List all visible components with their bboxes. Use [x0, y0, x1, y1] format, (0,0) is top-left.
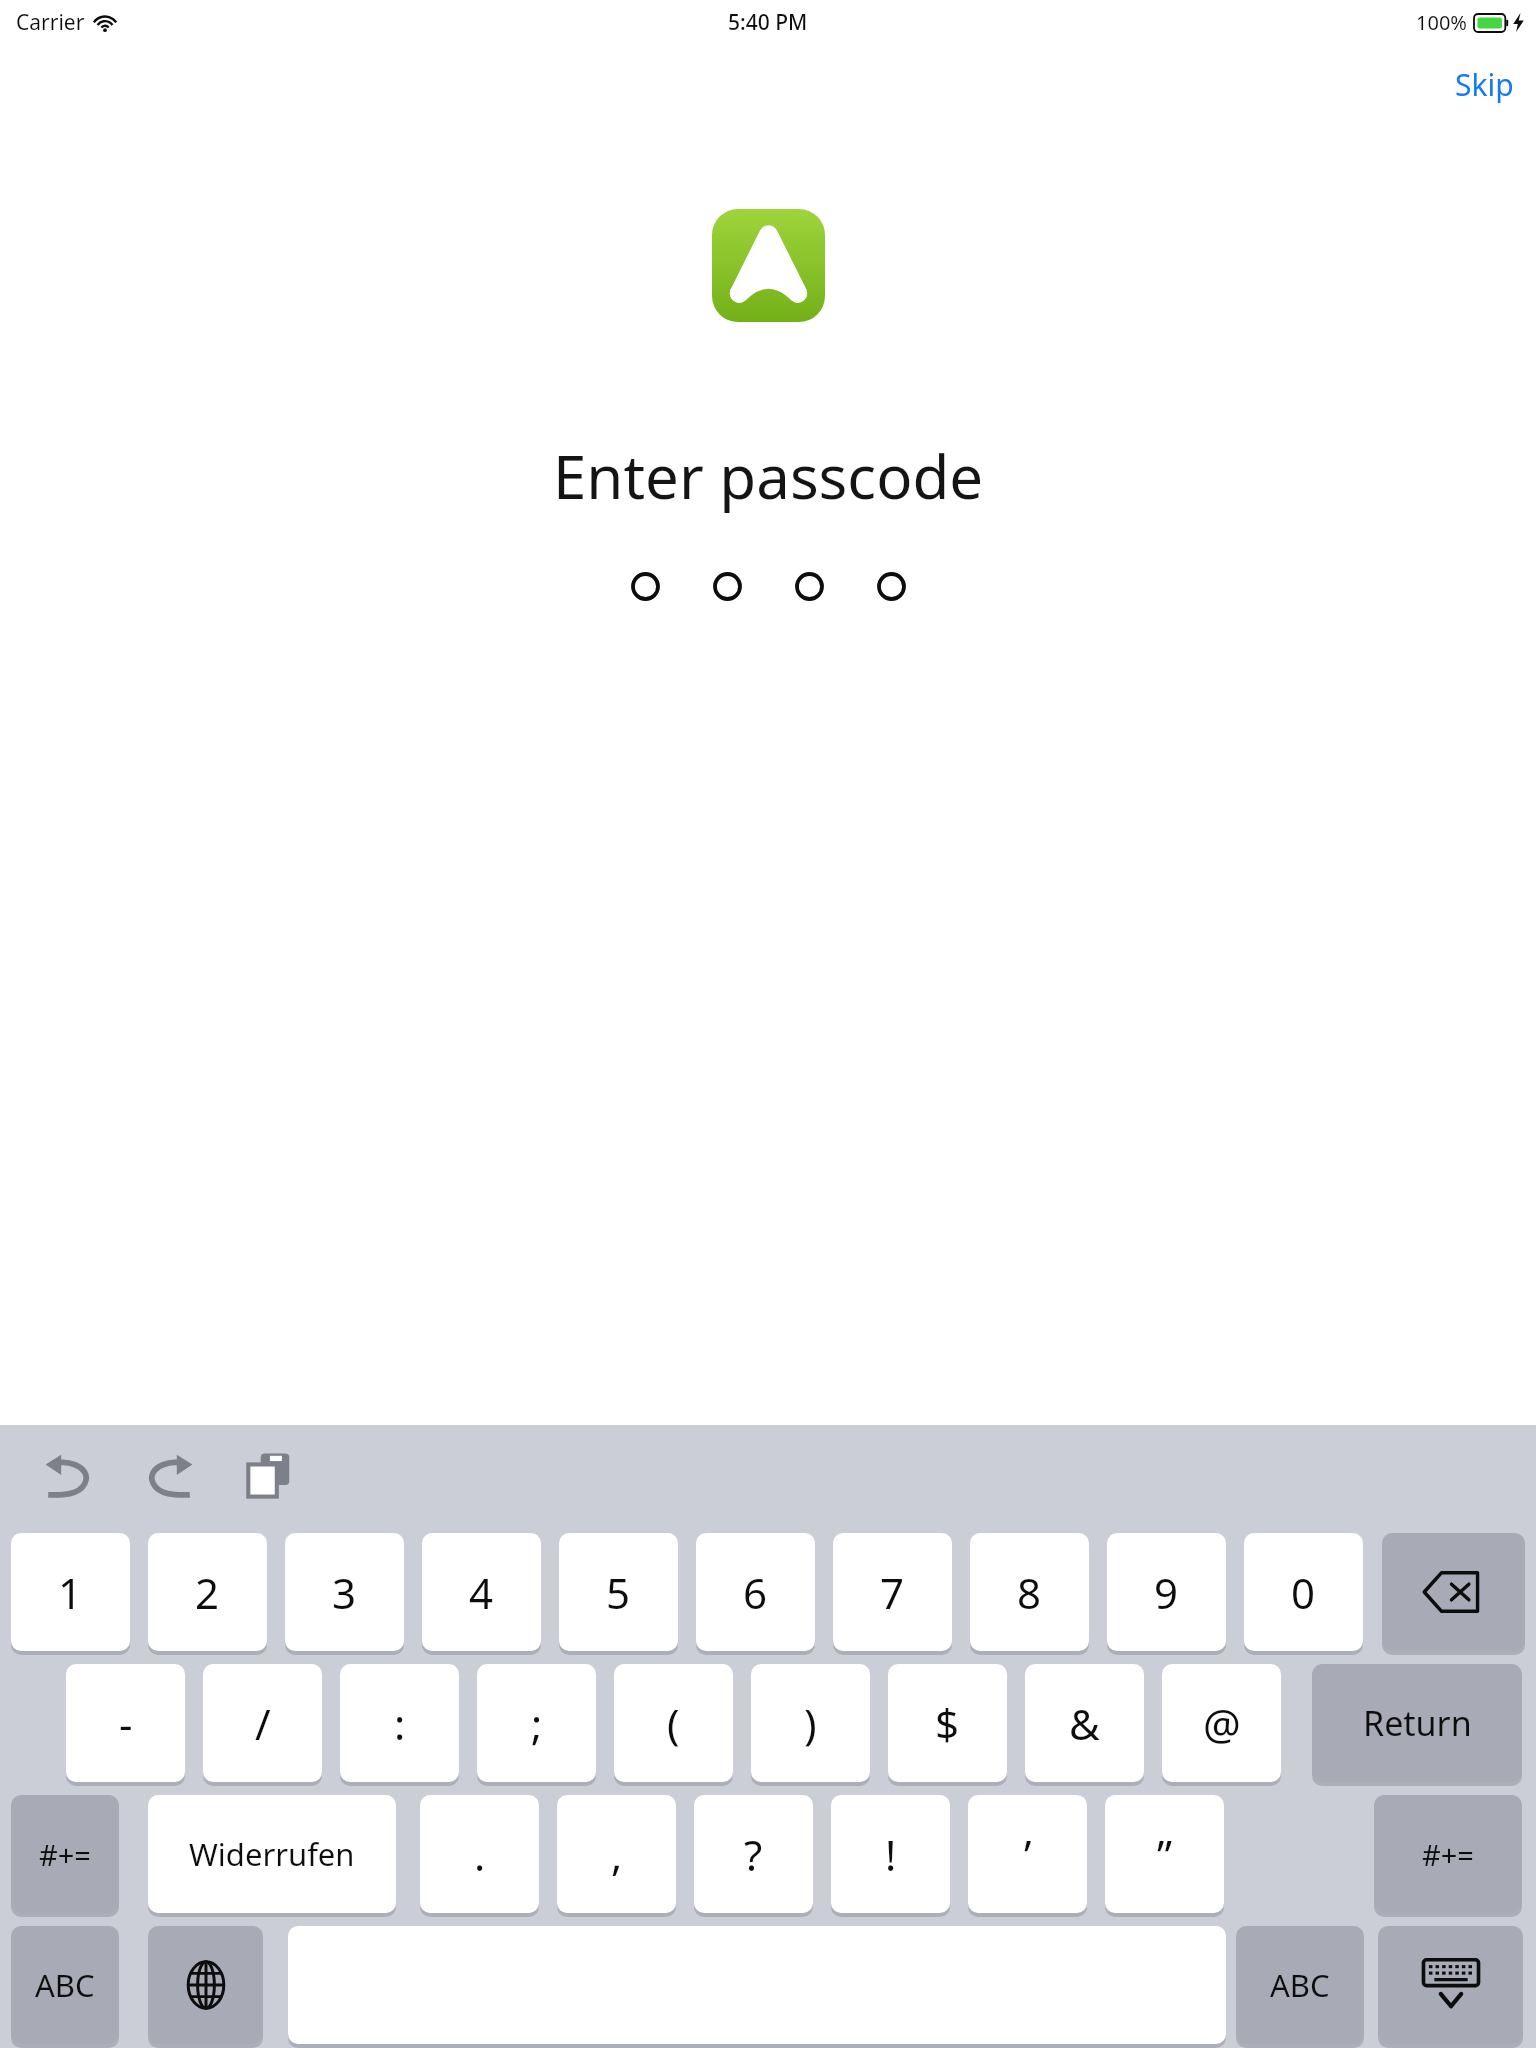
button[interactable]: 5 — [559, 1533, 678, 1651]
staticText: Enter passcode — [553, 435, 984, 517]
button[interactable]: Redo — [130, 1436, 208, 1514]
button[interactable]: 2 — [148, 1533, 267, 1651]
button[interactable]: #+= — [11, 1795, 119, 1913]
button[interactable]: Paste — [230, 1436, 308, 1514]
staticText: #+= — [1422, 1835, 1474, 1874]
button[interactable]: @ — [1162, 1664, 1281, 1782]
staticText: ABC — [35, 1964, 95, 2006]
button[interactable]: Skip — [1433, 56, 1536, 113]
button[interactable]: ? — [694, 1795, 813, 1913]
staticText: ( — [667, 1695, 680, 1752]
staticText: 4 — [469, 1564, 494, 1621]
staticText: Skip — [1455, 64, 1514, 105]
staticText: ; — [531, 1695, 543, 1752]
button[interactable]: . — [420, 1795, 539, 1913]
button[interactable]: 0 — [1244, 1533, 1363, 1651]
staticText: #+= — [39, 1835, 91, 1874]
button[interactable]: 1 — [11, 1533, 130, 1651]
button[interactable]: : — [340, 1664, 459, 1782]
staticText: Return — [1363, 1700, 1472, 1746]
button[interactable]: ; — [477, 1664, 596, 1782]
button[interactable]: ! — [831, 1795, 950, 1913]
button[interactable]: ’ — [968, 1795, 1087, 1913]
button[interactable]: 8 — [970, 1533, 1089, 1651]
button[interactable]: ( — [614, 1664, 733, 1782]
staticText: - — [119, 1695, 133, 1752]
button[interactable]: Hide keyboard — [1378, 1926, 1523, 2044]
staticText: , — [611, 1826, 623, 1883]
button[interactable]: Undo — [30, 1436, 108, 1514]
button[interactable]: #+= — [1374, 1795, 1522, 1913]
button[interactable]: Change keyboard — [148, 1926, 263, 2044]
staticText: ABC — [1270, 1964, 1330, 2006]
staticText: : — [394, 1695, 406, 1752]
staticText: Carrier — [16, 8, 85, 37]
staticText: @ — [1203, 1695, 1241, 1752]
button[interactable]: ) — [751, 1664, 870, 1782]
staticText: 5:40 PM — [728, 8, 808, 37]
staticText: 5 — [606, 1564, 631, 1621]
button[interactable]: Widerrufen — [148, 1795, 396, 1913]
staticText: . — [474, 1826, 486, 1883]
button[interactable]: ABC — [1236, 1926, 1364, 2044]
staticText: Widerrufen — [189, 1833, 355, 1875]
button[interactable]: $ — [888, 1664, 1007, 1782]
staticText: ’ — [1024, 1826, 1032, 1883]
staticText: ) — [804, 1695, 817, 1752]
button[interactable]: , — [557, 1795, 676, 1913]
staticText: 3 — [332, 1564, 357, 1621]
staticText: 100% — [1416, 9, 1467, 36]
button[interactable]: 3 — [285, 1533, 404, 1651]
staticText: $ — [935, 1695, 960, 1752]
staticText: 7 — [880, 1564, 905, 1621]
button[interactable]: 6 — [696, 1533, 815, 1651]
staticText: 6 — [743, 1564, 768, 1621]
staticText: ! — [885, 1826, 897, 1883]
button[interactable]: ABC — [11, 1926, 119, 2044]
staticText: ” — [1157, 1826, 1173, 1883]
button[interactable]: 9 — [1107, 1533, 1226, 1651]
staticText: 9 — [1154, 1564, 1179, 1621]
staticText: 2 — [195, 1564, 220, 1621]
button[interactable]: Backspace — [1382, 1533, 1525, 1651]
button[interactable]: 7 — [833, 1533, 952, 1651]
staticText: 1 — [58, 1564, 83, 1621]
staticText: 0 — [1291, 1564, 1316, 1621]
button[interactable]: ” — [1105, 1795, 1224, 1913]
button[interactable]: - — [66, 1664, 185, 1782]
staticText: 8 — [1017, 1564, 1042, 1621]
button[interactable]: / — [203, 1664, 322, 1782]
staticText: & — [1069, 1695, 1100, 1752]
staticText: ? — [744, 1826, 763, 1883]
button[interactable]: Return — [1312, 1664, 1522, 1782]
button[interactable]: 4 — [422, 1533, 541, 1651]
button[interactable]: & — [1025, 1664, 1144, 1782]
staticText: / — [255, 1695, 271, 1752]
